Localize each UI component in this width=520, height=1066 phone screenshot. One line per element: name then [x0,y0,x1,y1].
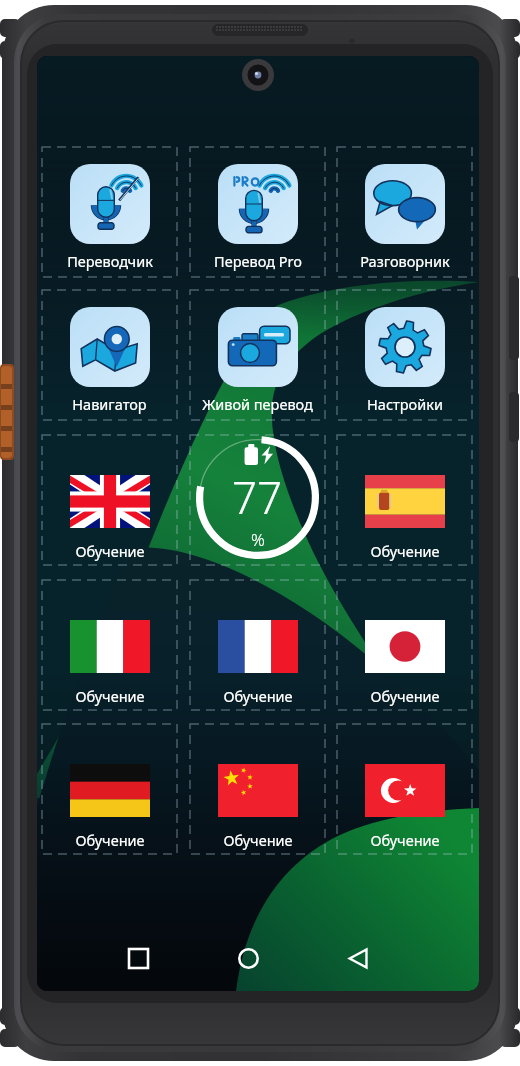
button[interactable]: 77 [190,435,325,565]
button[interactable]: Переводчик [42,147,177,277]
staticText: % [251,528,265,551]
button[interactable]: Обучение [337,580,472,710]
staticText: Обучение [75,686,145,706]
staticText: Перевод Pro [214,251,302,271]
staticText: Обучение [75,830,145,850]
staticText: Обучение [223,686,293,706]
button[interactable]: Обучение [337,435,472,565]
button[interactable]: Обучение [42,724,177,854]
staticText: Живой перевод [202,394,313,414]
staticText: Обучение [223,830,293,850]
button[interactable]: Живой перевод [190,290,325,420]
staticText: Обучение [370,830,440,850]
staticText: 77 [232,467,283,527]
staticText: Обучение [75,541,145,561]
button[interactable]: Обучение [42,580,177,710]
button[interactable]: Recent apps [105,925,171,991]
staticText: Разговорник [360,251,450,271]
button[interactable]: Back [325,925,391,991]
button[interactable]: Обучение [337,724,472,854]
button[interactable]: Обучение [190,580,325,710]
button[interactable]: Обучение [42,435,177,565]
staticText: Настройки [367,394,443,414]
button[interactable]: Разговорник [337,147,472,277]
button[interactable]: Настройки [337,290,472,420]
staticText: Обучение [370,541,440,561]
staticText: Навигатор [72,394,147,414]
button[interactable]: Home [215,925,281,991]
button[interactable]: Навигатор [42,290,177,420]
staticText: Переводчик [67,251,153,271]
button[interactable]: Обучение [190,724,325,854]
button[interactable]: Перевод Pro [190,147,325,277]
staticText: Обучение [370,686,440,706]
